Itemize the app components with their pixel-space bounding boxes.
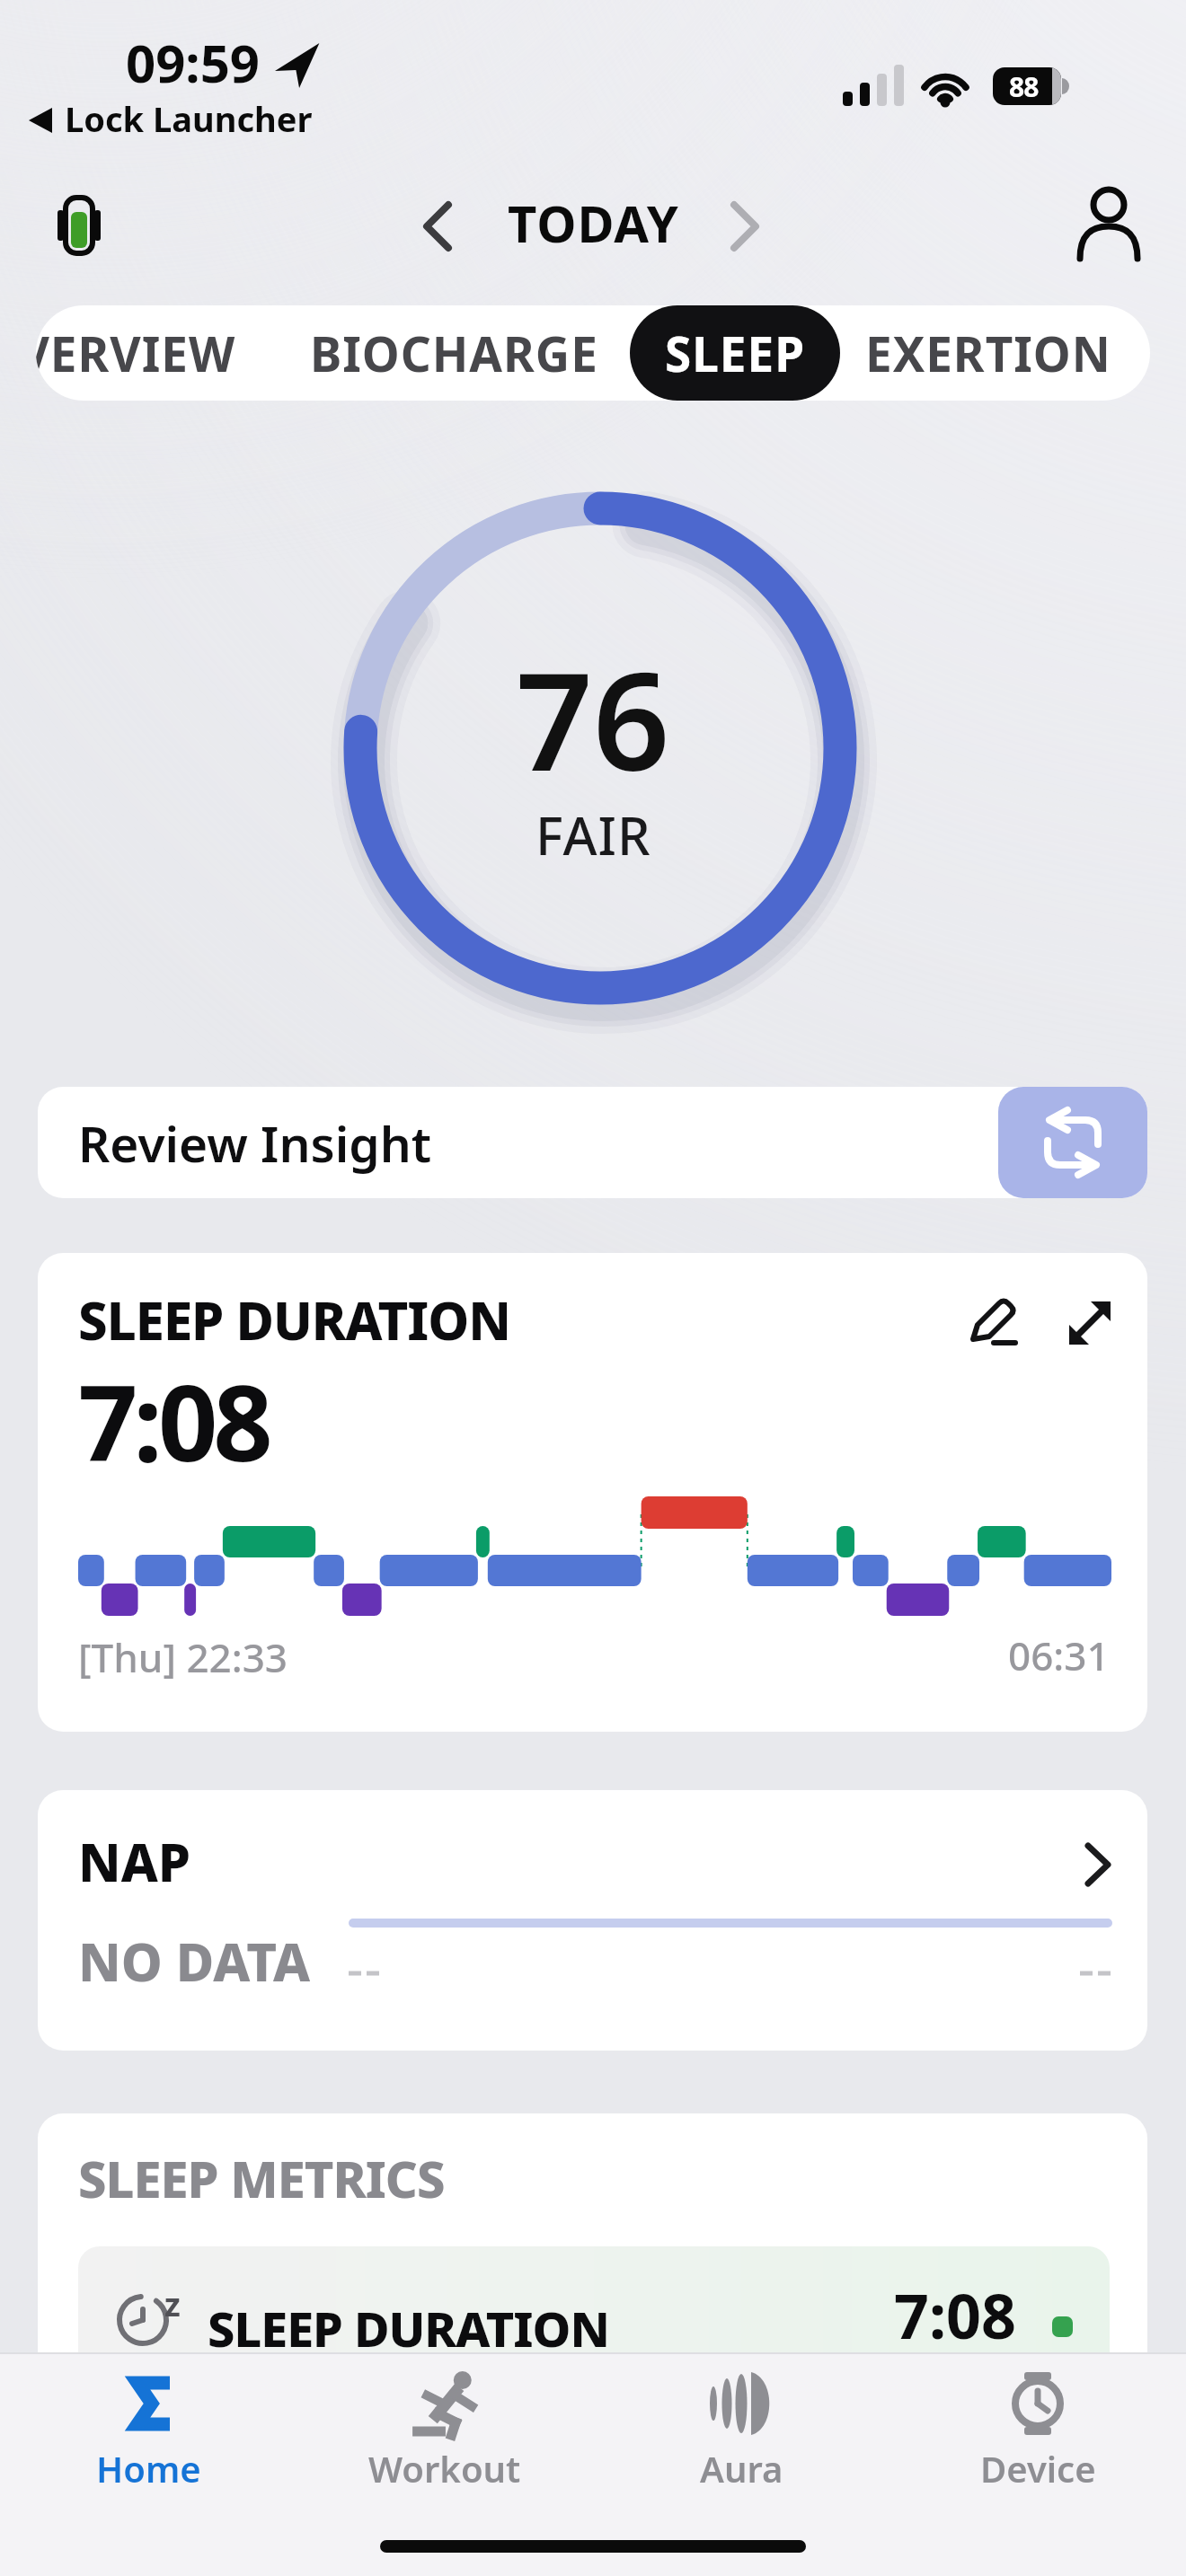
button[interactable]: SLEEP DURATION xyxy=(38,1253,1147,1732)
button[interactable]: OVERVIEW xyxy=(36,305,236,401)
button[interactable] xyxy=(422,201,453,251)
staticText: SLEEP DURATION xyxy=(208,2295,609,2361)
staticText: SLEEP DURATION xyxy=(78,1284,511,1355)
staticText: 76 xyxy=(516,627,670,810)
staticText: TODAY xyxy=(508,189,679,257)
button[interactable] xyxy=(58,198,101,253)
button[interactable]: SLEEP xyxy=(630,305,840,401)
staticText: Lock Launcher xyxy=(65,95,313,142)
button[interactable]: BIOCHARGE xyxy=(310,305,598,401)
button[interactable]: z xyxy=(78,2246,1110,2444)
staticText: z xyxy=(164,2282,181,2326)
button[interactable]: Workout xyxy=(296,2354,593,2576)
staticText: 7:08 xyxy=(78,1350,269,1492)
staticText: BIOCHARGE xyxy=(310,321,598,385)
button[interactable]: EXERTION xyxy=(865,305,1111,401)
staticText: NO DATA xyxy=(78,1926,311,1997)
staticText: NAP xyxy=(78,1826,191,1897)
button[interactable]: Aura xyxy=(593,2354,889,2576)
staticText: Workout xyxy=(368,2444,521,2492)
button[interactable] xyxy=(1075,187,1143,262)
staticText: EXERTION xyxy=(865,321,1111,385)
button[interactable]: Review Insight xyxy=(38,1087,1147,1198)
staticText: OVERVIEW xyxy=(36,321,236,385)
staticText: 06:31 xyxy=(1008,1628,1110,1682)
staticText: Aura xyxy=(700,2444,783,2492)
staticText: Review Insight xyxy=(78,1109,432,1177)
staticText: FAIR xyxy=(535,799,651,870)
staticText: Home xyxy=(96,2444,201,2492)
staticText: 7:08 xyxy=(894,2273,1016,2357)
staticText: 09:59 xyxy=(126,27,261,98)
button[interactable]: NAP xyxy=(38,1790,1147,2051)
staticText: Device xyxy=(980,2444,1096,2492)
button[interactable] xyxy=(998,1087,1147,1198)
button[interactable]: Device xyxy=(889,2354,1186,2576)
staticText: 88 xyxy=(1009,68,1039,105)
staticText: SLEEP METRICS xyxy=(78,2144,445,2212)
button[interactable]: Home xyxy=(0,2354,296,2576)
staticText: [Thu] 22:33 xyxy=(78,1630,288,1684)
button[interactable] xyxy=(730,201,760,251)
staticText: SLEEP xyxy=(665,321,806,385)
